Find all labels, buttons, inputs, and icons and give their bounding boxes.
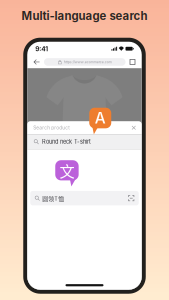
staticText: 文: [59, 159, 74, 181]
staticText: https://www.ecommerce.com: [64, 60, 112, 64]
staticText: Search product: [33, 125, 70, 131]
button[interactable]: 圆领T恤: [30, 191, 139, 205]
staticText: Round neck T-shirt: [42, 138, 91, 145]
staticText: 圆领T恤: [42, 194, 64, 202]
button[interactable]: Tabs: [129, 58, 136, 66]
button[interactable]: Back: [33, 58, 41, 66]
button[interactable]: Round neck T-shirt: [27, 134, 142, 149]
staticText: 9:41: [35, 45, 48, 53]
button[interactable]: Close search: [131, 125, 137, 131]
staticText: Multi-language search: [21, 9, 147, 23]
staticText: A: [95, 109, 106, 127]
